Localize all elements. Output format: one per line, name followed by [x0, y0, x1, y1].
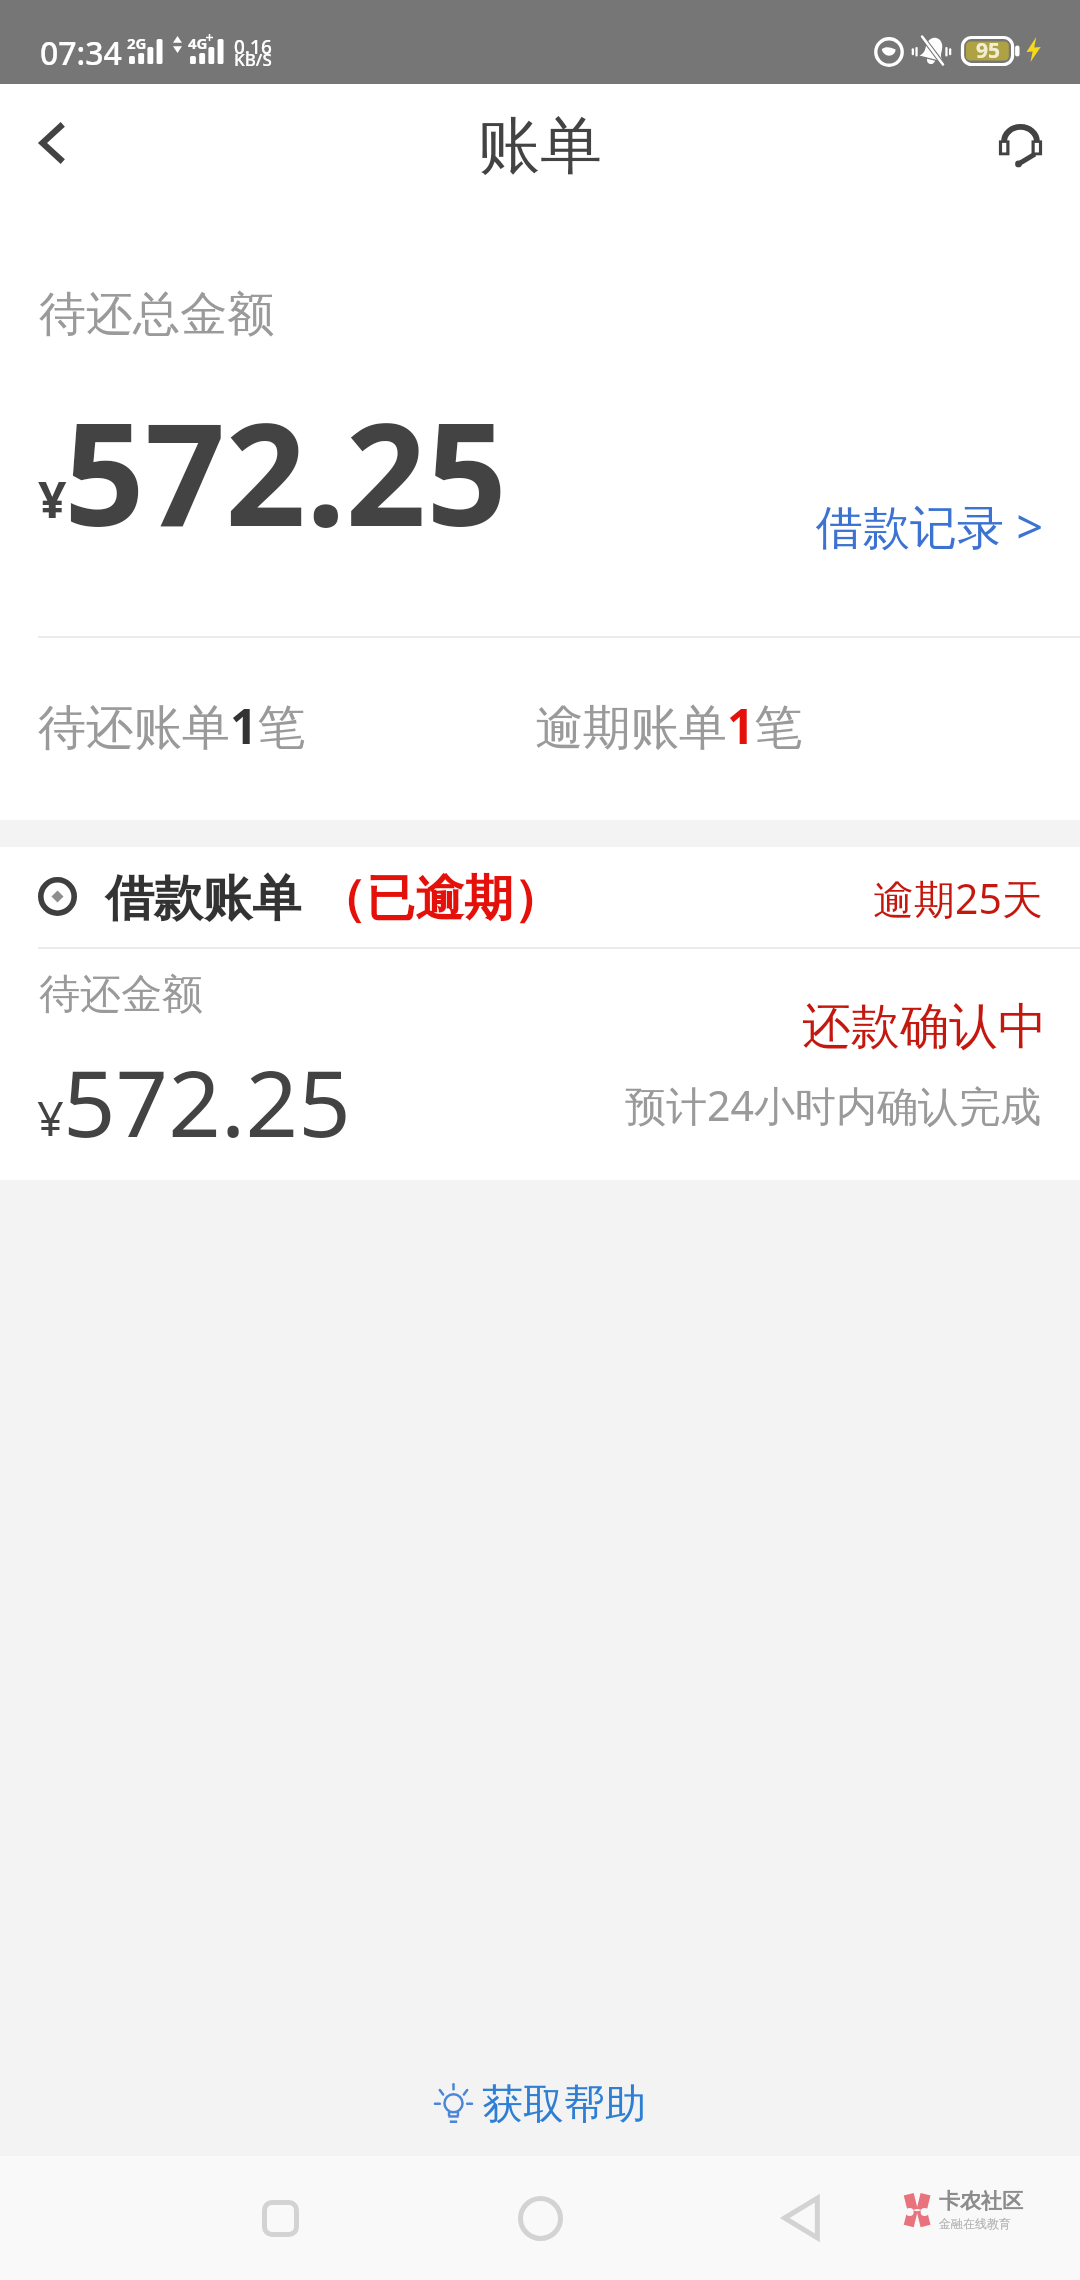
staticText: 逾期25天 — [873, 870, 1043, 926]
staticText: 待还金额 — [39, 969, 203, 1021]
button[interactable]: Home — [488, 2166, 592, 2270]
staticText: 572.25 — [64, 375, 507, 567]
staticText: 预计24小时内确认完成 — [625, 1077, 1041, 1133]
staticText: 待还总金额 — [39, 285, 274, 344]
staticText: 借款账单 — [105, 868, 301, 930]
staticText: 金融在线教育 — [939, 2216, 1011, 2231]
staticText: 0.16 — [234, 34, 272, 60]
staticText: 95 — [976, 36, 1001, 65]
button[interactable]: 获取帮助 — [411, 2065, 670, 2145]
staticText: 待还账单1笔 — [38, 693, 306, 759]
staticText: 卡农社区 — [939, 2188, 1023, 2214]
staticText: KB/S — [234, 48, 272, 71]
staticText: 逾期账单1笔 — [535, 693, 803, 759]
staticText: 2G — [127, 33, 147, 53]
staticText: ¥ — [37, 1086, 64, 1150]
staticText: 借款记录 > — [816, 494, 1044, 558]
staticText: （已逾期） — [317, 868, 562, 930]
staticText: 账单 — [478, 107, 602, 185]
staticText: ¥ — [38, 465, 67, 533]
button[interactable]: 借款记录 > — [802, 482, 1058, 570]
button[interactable]: Back — [749, 2166, 853, 2270]
staticText: 572.25 — [63, 1039, 351, 1164]
button[interactable]: Customer service — [980, 84, 1080, 220]
button[interactable]: Back — [0, 84, 104, 220]
button[interactable]: Recents — [228, 2166, 332, 2270]
staticText: 获取帮助 — [482, 2079, 646, 2131]
staticText: 4G — [188, 33, 208, 53]
staticText: 还款确认中 — [802, 996, 1047, 1058]
button[interactable]: 借款账单 — [0, 847, 1080, 1180]
staticText: 07:34 — [40, 31, 122, 75]
